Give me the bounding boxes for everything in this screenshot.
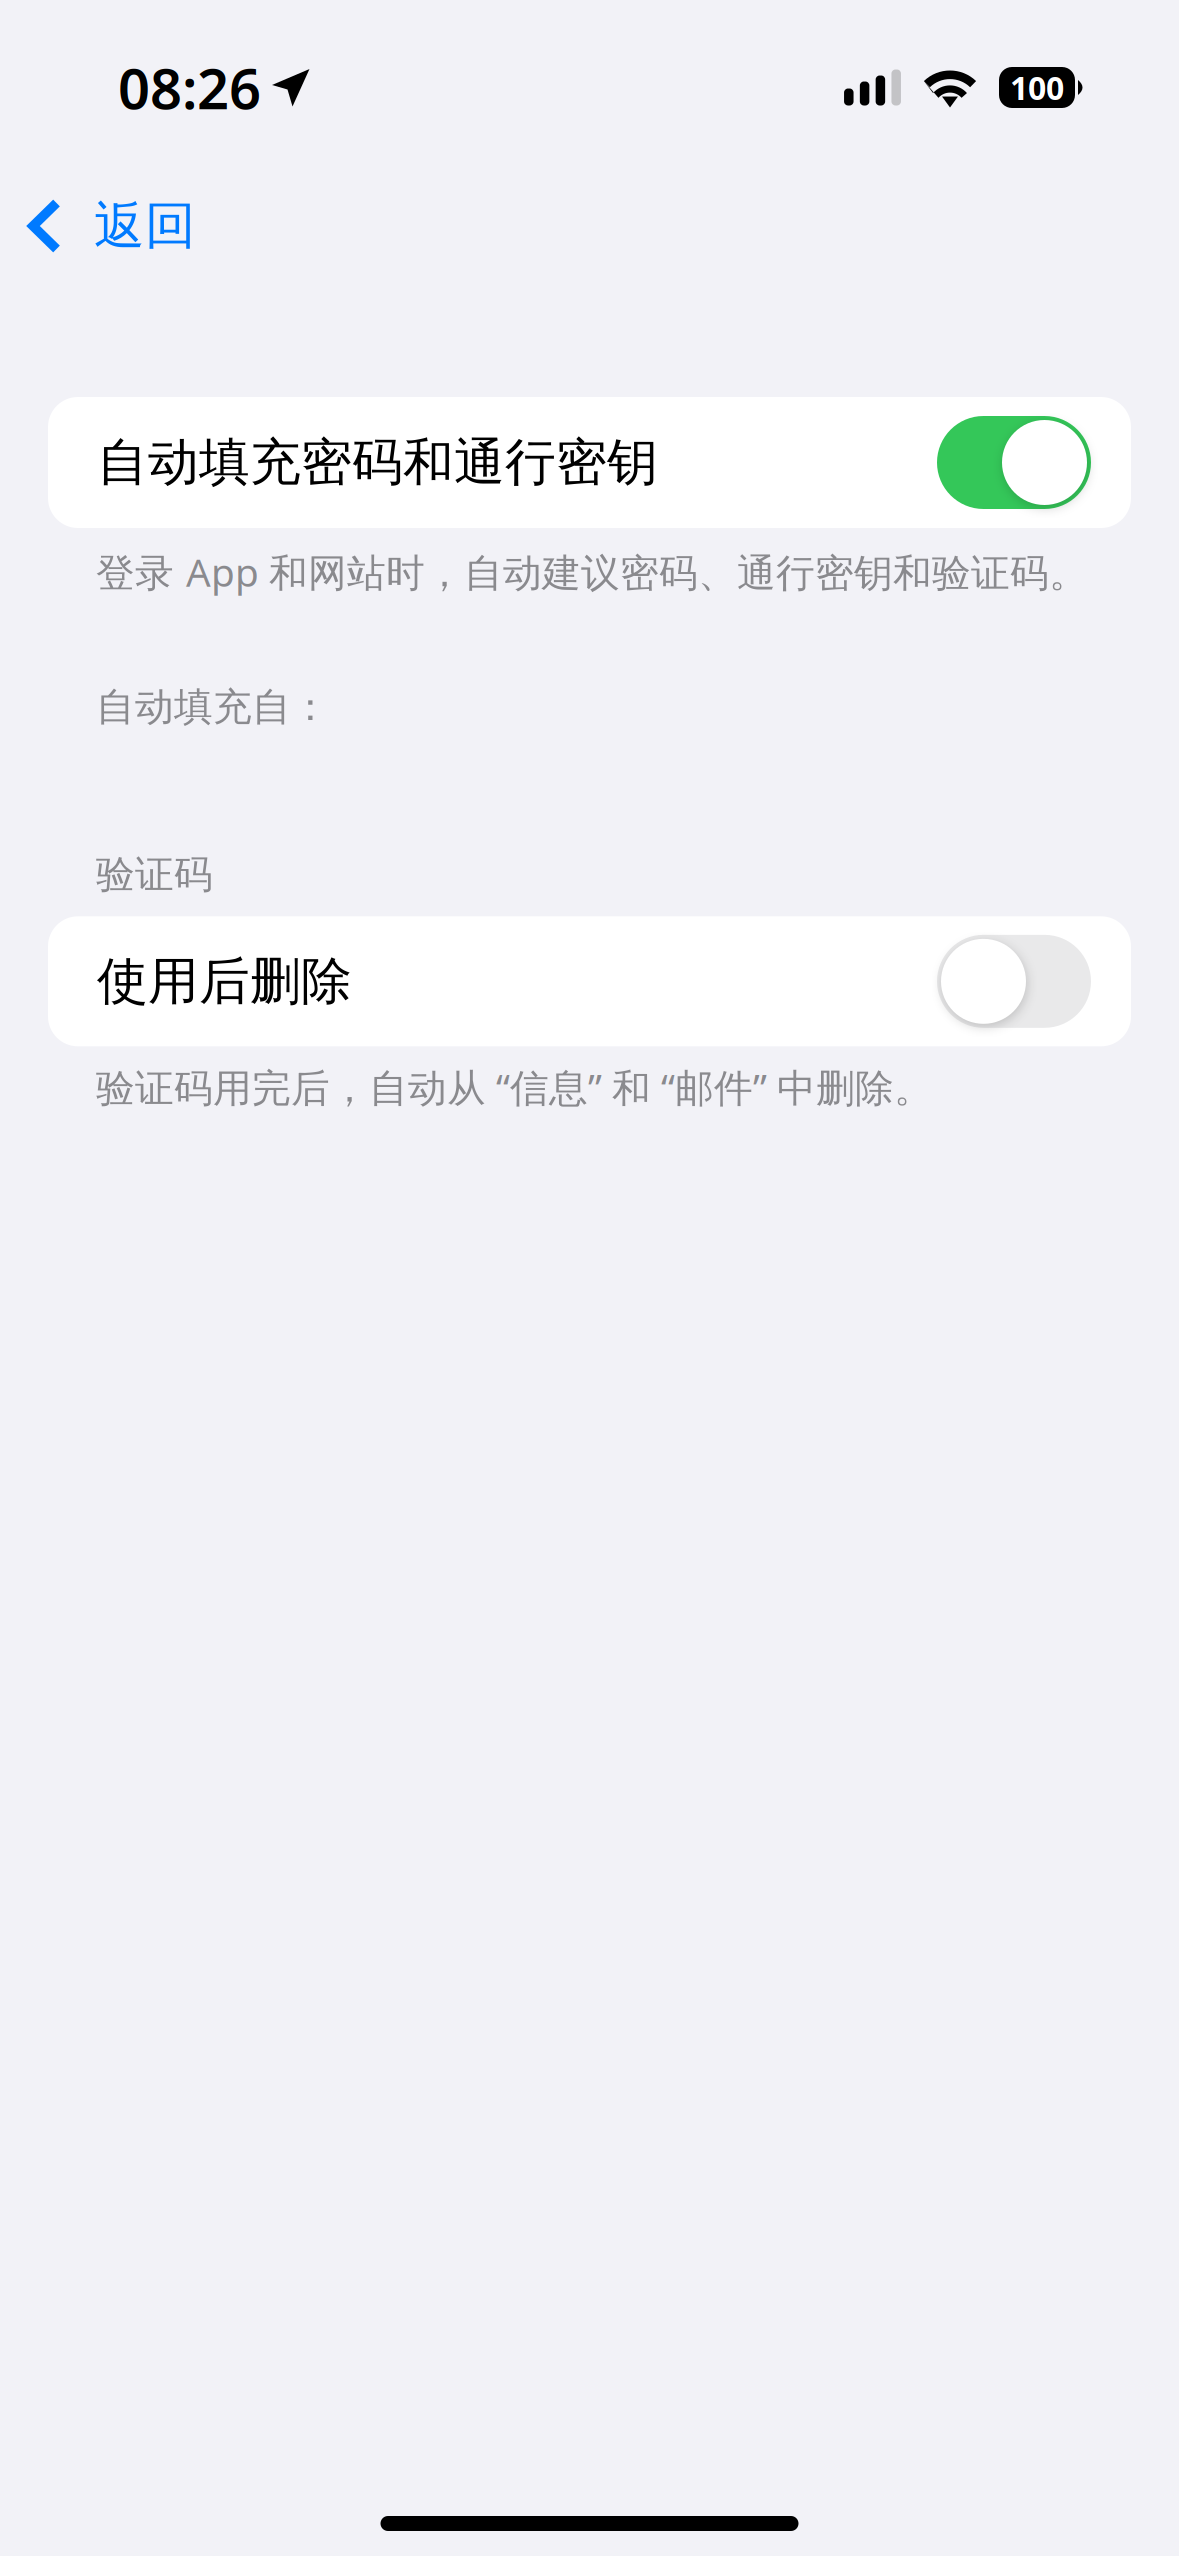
staticText: 登录 App 和网站时，自动建议密码、通行密钥和验证码。 — [96, 546, 1088, 597]
button[interactable]: 使用后删除 — [48, 916, 1131, 1046]
staticText: 100 — [1010, 66, 1064, 109]
staticText: 自动填充自： — [96, 683, 330, 731]
staticText: 验证码用完后，自动从 “信息” 和 “邮件” 中删除。 — [96, 1061, 933, 1113]
staticText: 08:26 — [118, 50, 261, 125]
staticText: 自动填充密码和通行密钥 — [97, 431, 658, 494]
staticText: 验证码 — [96, 851, 213, 898]
staticText: 返回 — [94, 195, 196, 257]
button[interactable]: 自动填充密码和通行密钥 — [48, 397, 1131, 528]
staticText: 使用后删除 — [97, 950, 352, 1012]
button[interactable]: 返回 — [0, 175, 212, 277]
